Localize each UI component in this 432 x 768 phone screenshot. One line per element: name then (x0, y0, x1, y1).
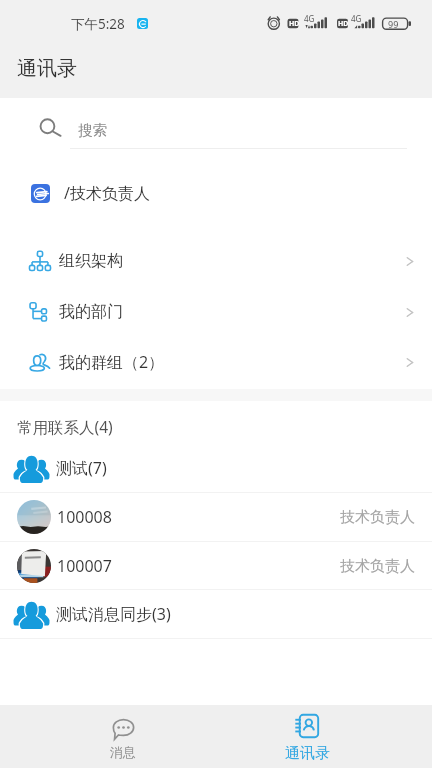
staticText: 99 (388, 18, 399, 30)
staticText: 技术负责人 (340, 557, 415, 576)
button[interactable]: 我的部门 (0, 287, 432, 337)
staticText: 4G (351, 13, 362, 24)
staticText: 测试(7) (56, 457, 107, 479)
staticText: 搜索 (78, 121, 107, 139)
staticText: 通讯录 (285, 744, 330, 763)
staticText: HD (289, 19, 300, 29)
staticText: 测试消息同步(3) (56, 603, 171, 625)
staticText: 通讯录 (17, 56, 77, 81)
staticText: 100007 (57, 555, 112, 577)
staticText: 消息 (110, 744, 136, 760)
staticText: 我的群组（2） (59, 351, 165, 373)
staticText: 技术负责人 (340, 508, 415, 527)
button[interactable]: /技术负责人 (0, 169, 432, 217)
button[interactable]: 我的群组（2） (0, 337, 432, 387)
button[interactable]: 消息 (53, 705, 193, 768)
staticText: HD (338, 19, 349, 29)
button[interactable]: 通讯录 (237, 705, 377, 768)
staticText: 100008 (57, 506, 112, 528)
staticText: 组织架构 (59, 251, 123, 271)
staticText: 我的部门 (59, 302, 123, 322)
staticText: 4G (304, 13, 315, 24)
button[interactable]: 组织架构 (0, 236, 432, 286)
button[interactable]: 测试(7) (0, 444, 432, 492)
button[interactable]: 100007 (0, 542, 432, 590)
staticText: /技术负责人 (64, 182, 150, 204)
button[interactable]: Search (0, 98, 432, 154)
staticText: 常用联系人(4) (17, 416, 113, 437)
button[interactable]: 测试消息同步(3) (0, 590, 432, 638)
button[interactable]: 100008 (0, 493, 432, 541)
staticText: 下午5:28 (71, 15, 125, 33)
